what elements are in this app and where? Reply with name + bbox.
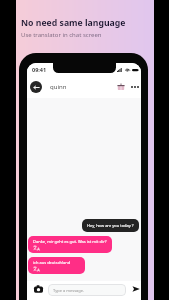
button[interactable]: Type a message. (48, 284, 126, 296)
button[interactable]: More options (131, 83, 139, 91)
staticText: quinn (50, 83, 67, 91)
staticText: No need same language (21, 17, 126, 29)
button[interactable]: ich aus deutschland (28, 257, 85, 274)
button[interactable]: Danke, mir geht es gut. Was ist mit dir? (28, 236, 112, 253)
staticText: Hey, how are you today ? (87, 223, 134, 228)
button[interactable]: Send (131, 284, 141, 294)
staticText: ich aus deutschland (33, 260, 71, 265)
staticText: Use translator in chat screen (21, 31, 102, 39)
staticText: Danke, mir geht es gut. Was ist mit dir? (33, 239, 107, 244)
button[interactable]: Hey, how are you today ? (82, 219, 139, 232)
button[interactable]: Contact avatar (116, 82, 126, 92)
staticText: 09:41 (32, 66, 47, 73)
button[interactable]: Camera (33, 284, 43, 294)
button[interactable]: Back (30, 81, 42, 93)
staticText: Type a message. (53, 288, 85, 293)
